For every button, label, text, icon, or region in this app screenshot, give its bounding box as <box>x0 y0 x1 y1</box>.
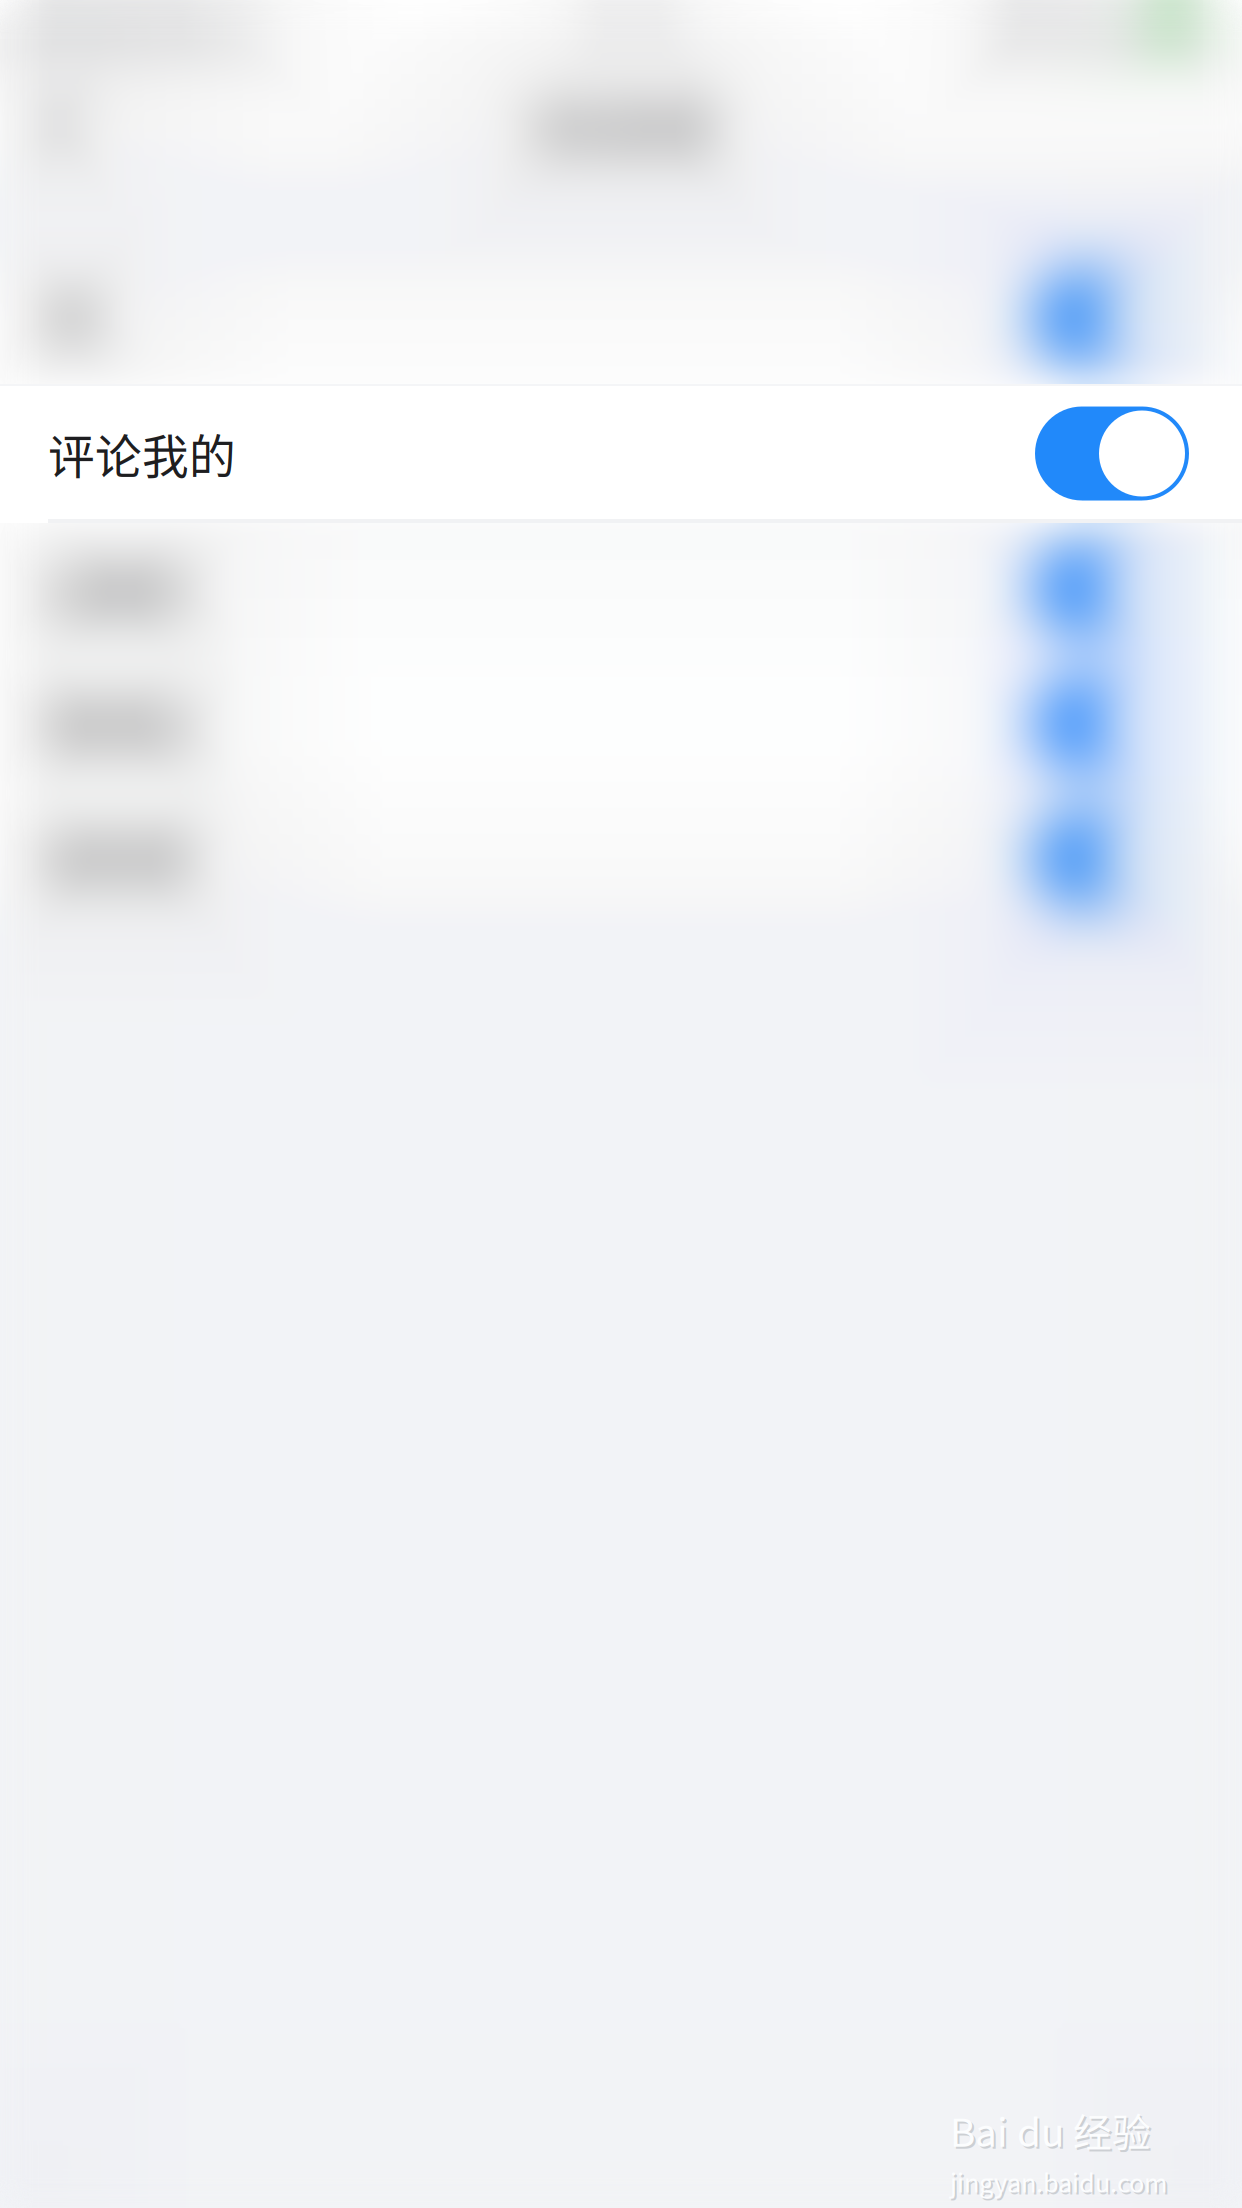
staticText: 新的赞 <box>48 825 189 892</box>
staticText: Bai du 经验 <box>952 2104 1153 2160</box>
button[interactable]: Back <box>0 62 150 190</box>
button[interactable]: 新粉丝 <box>0 656 1242 791</box>
button[interactable]: 赞 <box>0 251 1242 386</box>
staticText: jingyan.baidu.com <box>952 2165 1169 2202</box>
button[interactable]: 评论我的 <box>0 386 1242 521</box>
staticText: @我的 <box>48 555 186 622</box>
staticText: Bai du 经验 <box>950 2102 1151 2158</box>
staticText: 消息设置 <box>531 93 711 159</box>
staticText: jingyan.baidu.com <box>950 2163 1167 2200</box>
staticText: 新粉丝 <box>48 690 189 757</box>
staticText: 赞 <box>48 285 95 352</box>
staticText: 评论我的 <box>48 420 236 487</box>
button[interactable]: @我的 <box>0 521 1242 656</box>
button[interactable]: 新的赞 <box>0 791 1242 926</box>
